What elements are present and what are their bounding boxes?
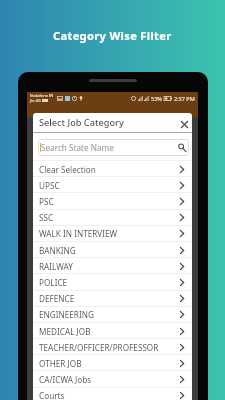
staticText: DEFENCE (39, 293, 75, 304)
staticText: UPSC (39, 180, 60, 191)
button[interactable]: OTHER JOB (33, 355, 192, 371)
button[interactable]: PSC (33, 193, 192, 209)
staticText: BANKING (39, 245, 76, 256)
staticText: OTHER JOB (39, 358, 82, 369)
staticText: Select Job Category (39, 116, 124, 129)
staticText: Courts (39, 390, 65, 400)
staticText: WALK IN INTERVIEW (39, 228, 118, 239)
staticText: Clear Selection (39, 164, 96, 175)
staticText: ENGINEERING (39, 309, 94, 320)
staticText: Jio 4G (30, 98, 41, 103)
button[interactable]: UPSC (33, 177, 192, 193)
button[interactable]: RAILWAY (33, 258, 192, 274)
staticText: TEACHER/OFFICER/PROFESSOR (39, 342, 159, 353)
staticText: Vodafone IN (30, 93, 54, 98)
button[interactable]: POLICE (33, 274, 192, 290)
staticText: 53% (151, 95, 162, 102)
button[interactable]: WALK IN INTERVIEW (33, 225, 192, 241)
button[interactable]: Clear Selection (33, 161, 192, 177)
staticText: CA/ICWA Jobs (39, 374, 92, 385)
staticText: POLICE (39, 277, 68, 288)
staticText: Search State Name (41, 142, 114, 153)
button[interactable]: Courts (33, 387, 192, 400)
button[interactable]: Search State Name (38, 139, 189, 156)
button[interactable]: TEACHER/OFFICER/PROFESSOR (33, 339, 192, 355)
staticText: 2:37 PM (174, 95, 195, 102)
button[interactable]: Close (178, 116, 191, 129)
button[interactable]: SSC (33, 209, 192, 225)
staticText: Category Wise Filter (53, 28, 172, 43)
staticText: SSC (39, 212, 54, 223)
button[interactable]: MEDICAL JOB (33, 323, 192, 339)
button[interactable]: BANKING (33, 242, 192, 258)
staticText: RAILWAY (39, 261, 73, 272)
button[interactable]: DEFENCE (33, 290, 192, 306)
staticText: MEDICAL JOB (39, 326, 91, 337)
button[interactable]: CA/ICWA Jobs (33, 371, 192, 387)
button[interactable]: ENGINEERING (33, 306, 192, 322)
staticText: PSC (39, 196, 54, 207)
